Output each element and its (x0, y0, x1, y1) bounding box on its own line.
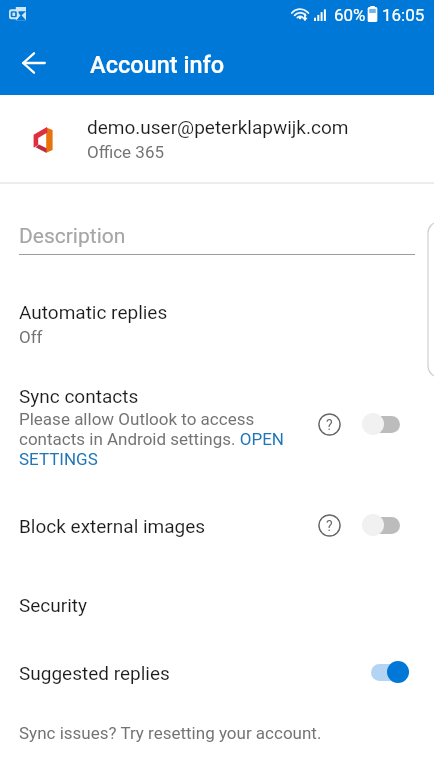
button[interactable]: Help (318, 413, 341, 436)
button[interactable]: Disabled toggle (362, 413, 409, 435)
staticText: demo.user@peterklapwijk.com (87, 116, 349, 138)
button[interactable]: Back (10, 39, 58, 87)
button[interactable]: Help (318, 514, 341, 537)
staticText: 16:05 (382, 5, 425, 25)
staticText: Security (19, 594, 88, 616)
staticText: Account info (90, 51, 225, 79)
staticText: ? (326, 417, 333, 433)
staticText: Suggested replies (19, 662, 170, 684)
staticText: 60% (334, 5, 366, 25)
staticText: Off (19, 327, 43, 347)
staticText: Office 365 (87, 142, 164, 162)
button[interactable] (0, 95, 434, 182)
staticText: Description (19, 224, 126, 249)
staticText: ? (326, 518, 333, 534)
staticText: Please allow Outlook to access contacts … (19, 409, 285, 469)
button[interactable]: Disabled toggle (362, 514, 409, 536)
staticText: Block external images (19, 515, 206, 537)
staticText: Sync contacts (19, 385, 139, 407)
button[interactable]: Enabled toggle (362, 661, 409, 683)
staticText: Automatic replies (19, 301, 168, 323)
staticText: Sync issues? Try resetting your account. (19, 723, 322, 743)
